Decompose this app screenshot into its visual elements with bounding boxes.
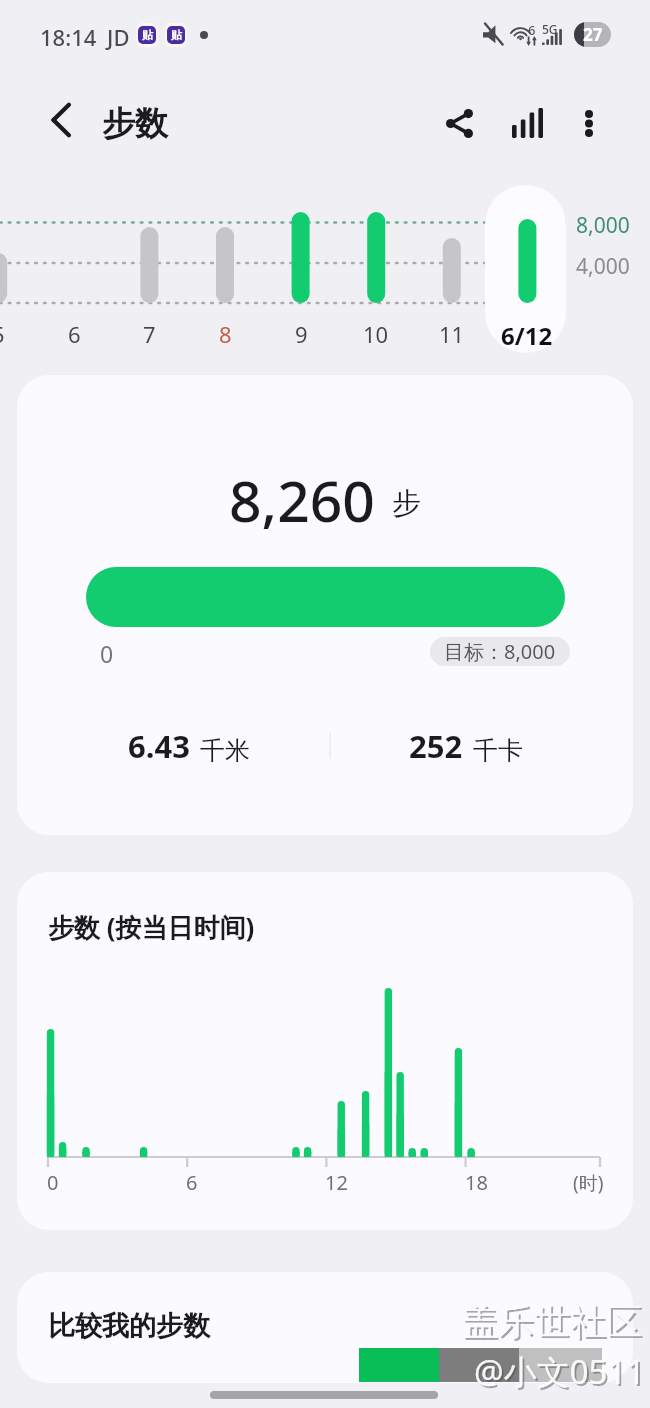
button[interactable]: Trends: [497, 93, 557, 153]
staticText: 千米: [200, 735, 250, 766]
staticText: 8,260: [229, 461, 375, 539]
button[interactable]: 9: [264, 185, 338, 355]
staticText: 10: [363, 319, 389, 349]
staticText: 步数 (按当日时间): [48, 909, 255, 945]
staticText: 12: [325, 1169, 348, 1196]
button[interactable]: 步数 (按当日时间): [17, 872, 633, 1230]
staticText: 6: [68, 319, 81, 349]
staticText: @小文0511: [474, 1349, 646, 1394]
staticText: 比较我的步数: [48, 1309, 210, 1343]
staticText: 贴: [142, 28, 153, 42]
staticText: 步: [392, 485, 421, 522]
staticText: 6: [186, 1169, 198, 1196]
staticText: 6.43: [128, 725, 190, 767]
button[interactable]: 比较我的步数: [17, 1272, 633, 1383]
staticText: 6: [528, 21, 536, 39]
button[interactable]: 5: [0, 185, 35, 355]
button[interactable]: 8: [188, 185, 262, 355]
staticText: 11: [439, 319, 465, 349]
staticText: 5: [0, 319, 5, 349]
staticText: 0: [100, 638, 114, 669]
staticText: 8,000: [576, 211, 630, 240]
button[interactable]: 6: [37, 185, 111, 355]
staticText: JD: [107, 22, 130, 52]
button[interactable]: More options: [559, 93, 619, 153]
staticText: 5G: [542, 21, 558, 37]
staticText: 6/12: [501, 319, 553, 352]
button[interactable]: 10: [339, 185, 413, 355]
staticText: 27: [583, 23, 603, 46]
button[interactable]: 6/12: [490, 185, 564, 355]
staticText: 252: [409, 725, 463, 767]
staticText: 18:14: [40, 22, 97, 52]
staticText: 9: [295, 319, 308, 349]
staticText: 贴: [171, 28, 182, 42]
staticText: 0: [47, 1169, 59, 1196]
button[interactable]: 7: [112, 185, 186, 355]
staticText: 18: [465, 1169, 488, 1196]
staticText: @小文0511: [476, 1351, 648, 1396]
staticText: 步数: [102, 103, 168, 145]
button[interactable]: [485, 185, 566, 353]
staticText: 4,000: [576, 252, 630, 281]
button[interactable]: Back: [34, 93, 88, 147]
button[interactable]: 8,260: [17, 375, 633, 835]
staticText: (时): [573, 1170, 604, 1196]
button[interactable]: 11: [415, 185, 489, 355]
staticText: 7: [143, 319, 156, 349]
staticText: 盖乐世社区: [464, 1301, 644, 1346]
staticText: 盖乐世社区: [462, 1299, 642, 1344]
staticText: 8: [219, 319, 232, 349]
staticText: 目标：8,000: [444, 638, 556, 665]
button[interactable]: Share: [429, 93, 489, 153]
staticText: 千卡: [473, 735, 523, 766]
